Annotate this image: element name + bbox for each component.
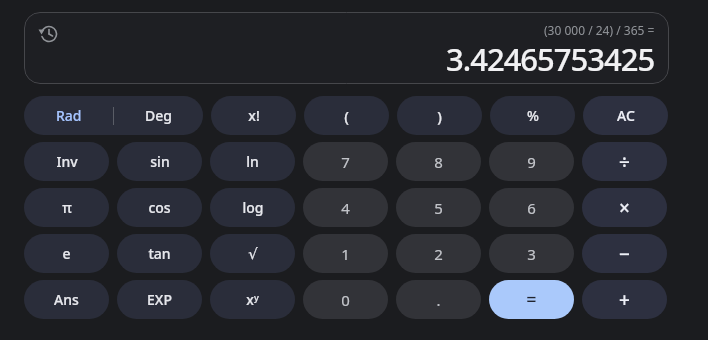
button[interactable]: 4 [303, 188, 388, 227]
button[interactable]: Rad [24, 96, 203, 135]
button[interactable]: Ans [24, 280, 109, 319]
staticText: (30 000 / 24) / 365 = [544, 22, 655, 38]
staticText: ) [437, 106, 442, 126]
button[interactable]: √ [210, 234, 295, 273]
button[interactable]: 0 [303, 280, 388, 319]
button[interactable]: e [24, 234, 109, 273]
button[interactable]: ( [304, 96, 389, 135]
staticText: tan [148, 244, 171, 263]
staticText: 5 [434, 198, 443, 218]
staticText: % [527, 106, 539, 125]
button[interactable]: 5 [396, 188, 481, 227]
button[interactable]: Inv [24, 142, 109, 181]
button[interactable]: . [396, 280, 481, 319]
staticText: 2 [434, 244, 443, 264]
button[interactable]: 9 [489, 142, 574, 181]
staticText: × [619, 195, 630, 221]
button[interactable]: AC [583, 96, 668, 135]
staticText: 7 [341, 152, 350, 172]
staticText: 0 [341, 290, 350, 310]
button[interactable]: x! [211, 96, 296, 135]
staticText: AC [617, 106, 635, 125]
button[interactable]: EXP [117, 280, 202, 319]
button[interactable]: − [582, 234, 667, 273]
button[interactable]: ln [210, 142, 295, 181]
staticText: Deg [145, 106, 172, 125]
button[interactable]: 1 [303, 234, 388, 273]
button[interactable]: 2 [396, 234, 481, 273]
staticText: cos [148, 198, 171, 217]
staticText: 3.42465753425 [446, 38, 655, 80]
staticText: ln [246, 152, 259, 171]
staticText: . [436, 290, 441, 310]
button[interactable]: 6 [489, 188, 574, 227]
staticText: xʸ [246, 290, 259, 309]
staticText: + [619, 287, 630, 313]
button[interactable]: log [210, 188, 295, 227]
staticText: Rad [56, 106, 82, 125]
button[interactable]: 8 [396, 142, 481, 181]
staticText: EXP [147, 290, 172, 309]
button[interactable]: 7 [303, 142, 388, 181]
staticText: − [619, 241, 630, 267]
button[interactable]: ) [397, 96, 482, 135]
staticText: = [526, 287, 537, 312]
button[interactable]: π [24, 188, 109, 227]
staticText: 3 [527, 244, 536, 264]
button[interactable]: × [582, 188, 667, 227]
button[interactable]: xʸ [210, 280, 295, 319]
staticText: 6 [527, 198, 536, 218]
staticText: ( [344, 106, 349, 126]
staticText: 8 [434, 152, 443, 172]
button[interactable]: % [490, 96, 575, 135]
button[interactable]: sin [117, 142, 202, 181]
button[interactable]: = [489, 280, 574, 319]
button[interactable]: cos [117, 188, 202, 227]
staticText: e [62, 244, 71, 263]
staticText: π [62, 198, 72, 217]
staticText: 1 [341, 244, 350, 264]
button[interactable]: ÷ [582, 142, 667, 181]
button[interactable]: + [582, 280, 667, 319]
button[interactable]: tan [117, 234, 202, 273]
button[interactable]: 3 [489, 234, 574, 273]
staticText: sin [150, 152, 170, 171]
staticText: 4 [341, 198, 350, 218]
staticText: 9 [527, 152, 536, 172]
staticText: Inv [56, 152, 78, 171]
staticText: x! [248, 106, 260, 125]
staticText: ÷ [619, 149, 630, 175]
staticText: log [242, 198, 264, 217]
staticText: √ [248, 245, 258, 262]
staticText: Ans [54, 290, 79, 309]
button[interactable] [38, 24, 58, 44]
